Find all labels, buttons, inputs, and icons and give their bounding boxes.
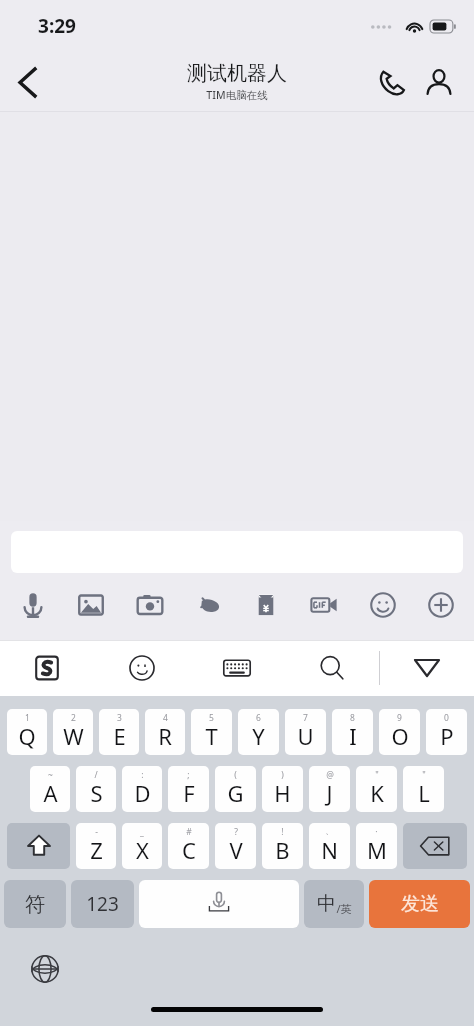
staticText: 测试机器人	[187, 61, 287, 86]
staticText: "	[422, 769, 426, 781]
staticText: ?	[234, 826, 238, 838]
button[interactable]: :	[122, 766, 162, 812]
staticText: A	[43, 778, 58, 808]
staticText: L	[418, 778, 430, 808]
button[interactable]: 1	[7, 709, 47, 755]
button[interactable]: GIF	[305, 586, 343, 624]
staticText: )	[281, 769, 284, 781]
button[interactable]: 3	[99, 709, 139, 755]
staticText: M	[367, 835, 387, 865]
staticText: Y	[252, 721, 265, 751]
button[interactable]: Backspace	[403, 823, 467, 869]
button[interactable]: More	[422, 586, 460, 624]
staticText: -	[95, 826, 98, 838]
button[interactable]: /	[76, 766, 116, 812]
staticText: :	[141, 769, 144, 781]
button[interactable]: _	[122, 823, 162, 869]
staticText: /	[94, 769, 98, 781]
button[interactable]: )	[262, 766, 303, 812]
button[interactable]: Search	[305, 641, 359, 695]
staticText: C	[182, 835, 196, 865]
button[interactable]: 8	[332, 709, 373, 755]
button[interactable]: Shift	[7, 823, 70, 869]
button[interactable]: Red packet	[247, 586, 285, 624]
button[interactable]: 6	[238, 709, 279, 755]
button[interactable]: Camera	[131, 586, 169, 624]
staticText: W	[63, 721, 84, 751]
staticText: "	[375, 769, 379, 781]
button[interactable]: "	[403, 766, 444, 812]
staticText: !	[281, 826, 284, 838]
button[interactable]: ;	[168, 766, 209, 812]
button[interactable]: Back	[0, 55, 54, 109]
button[interactable]: (	[215, 766, 256, 812]
staticText: 中	[317, 892, 336, 916]
button[interactable]: 0	[426, 709, 467, 755]
staticText: J	[326, 778, 333, 808]
button[interactable]: ?	[215, 823, 256, 869]
staticText: 7	[303, 712, 308, 724]
button[interactable]: ·	[356, 823, 397, 869]
staticText: TIM电脑在线	[206, 88, 268, 102]
staticText: (	[234, 769, 237, 781]
staticText: S	[90, 778, 103, 808]
button[interactable]: Call	[370, 61, 412, 103]
button[interactable]: Contact profile	[418, 61, 460, 103]
button[interactable]: "	[356, 766, 397, 812]
button[interactable]: #	[168, 823, 209, 869]
button[interactable]: !	[262, 823, 303, 869]
button[interactable]: 4	[145, 709, 185, 755]
staticText: G	[227, 778, 244, 808]
staticText: Z	[90, 835, 103, 865]
staticText: #	[186, 826, 192, 838]
button[interactable]: 7	[285, 709, 326, 755]
staticText: 123	[86, 891, 119, 917]
staticText: 发送	[401, 892, 439, 916]
button[interactable]: 中	[304, 880, 364, 928]
button[interactable]: 发送	[369, 880, 470, 928]
staticText: T	[205, 721, 218, 751]
button[interactable]: Hide keyboard	[380, 640, 474, 696]
button[interactable]: 、	[309, 823, 350, 869]
button[interactable]: 9	[379, 709, 420, 755]
button[interactable]: ~	[30, 766, 70, 812]
staticText: 2	[71, 712, 76, 724]
button[interactable]: -	[76, 823, 116, 869]
button[interactable]	[139, 880, 299, 928]
staticText: 、	[325, 826, 334, 837]
staticText: F	[183, 778, 195, 808]
button[interactable]: 123	[71, 880, 134, 928]
staticText: 5	[209, 712, 214, 724]
staticText: 8	[350, 712, 355, 724]
staticText: 符	[25, 892, 45, 917]
staticText: @	[326, 769, 334, 781]
button[interactable]: 符	[4, 880, 66, 928]
button[interactable]: Change language	[22, 946, 68, 992]
staticText: B	[275, 835, 290, 865]
staticText: X	[136, 835, 149, 865]
staticText: _	[140, 826, 144, 838]
staticText: 3	[117, 712, 122, 724]
staticText: 4	[163, 712, 168, 724]
button[interactable]: Emoticons	[115, 641, 169, 695]
button[interactable]: Poke	[189, 586, 227, 624]
staticText: V	[229, 835, 243, 865]
staticText: U	[297, 721, 314, 751]
staticText: I	[349, 721, 357, 751]
button[interactable]: 5	[191, 709, 232, 755]
button[interactable]: Voice message	[14, 586, 52, 624]
staticText: 1	[25, 712, 30, 724]
button[interactable]: Emoji	[364, 586, 402, 624]
button[interactable]: @	[309, 766, 350, 812]
button[interactable]: Keyboard layout	[210, 641, 264, 695]
staticText: 3:29	[38, 13, 76, 39]
staticText: 9	[397, 712, 402, 724]
staticText: D	[134, 778, 151, 808]
staticText: 0	[444, 712, 449, 724]
button[interactable]: 2	[53, 709, 93, 755]
button[interactable]: Sogou input	[20, 641, 74, 695]
button[interactable]: Photo album	[72, 586, 110, 624]
staticText: E	[113, 721, 126, 751]
staticText: O	[391, 721, 409, 751]
